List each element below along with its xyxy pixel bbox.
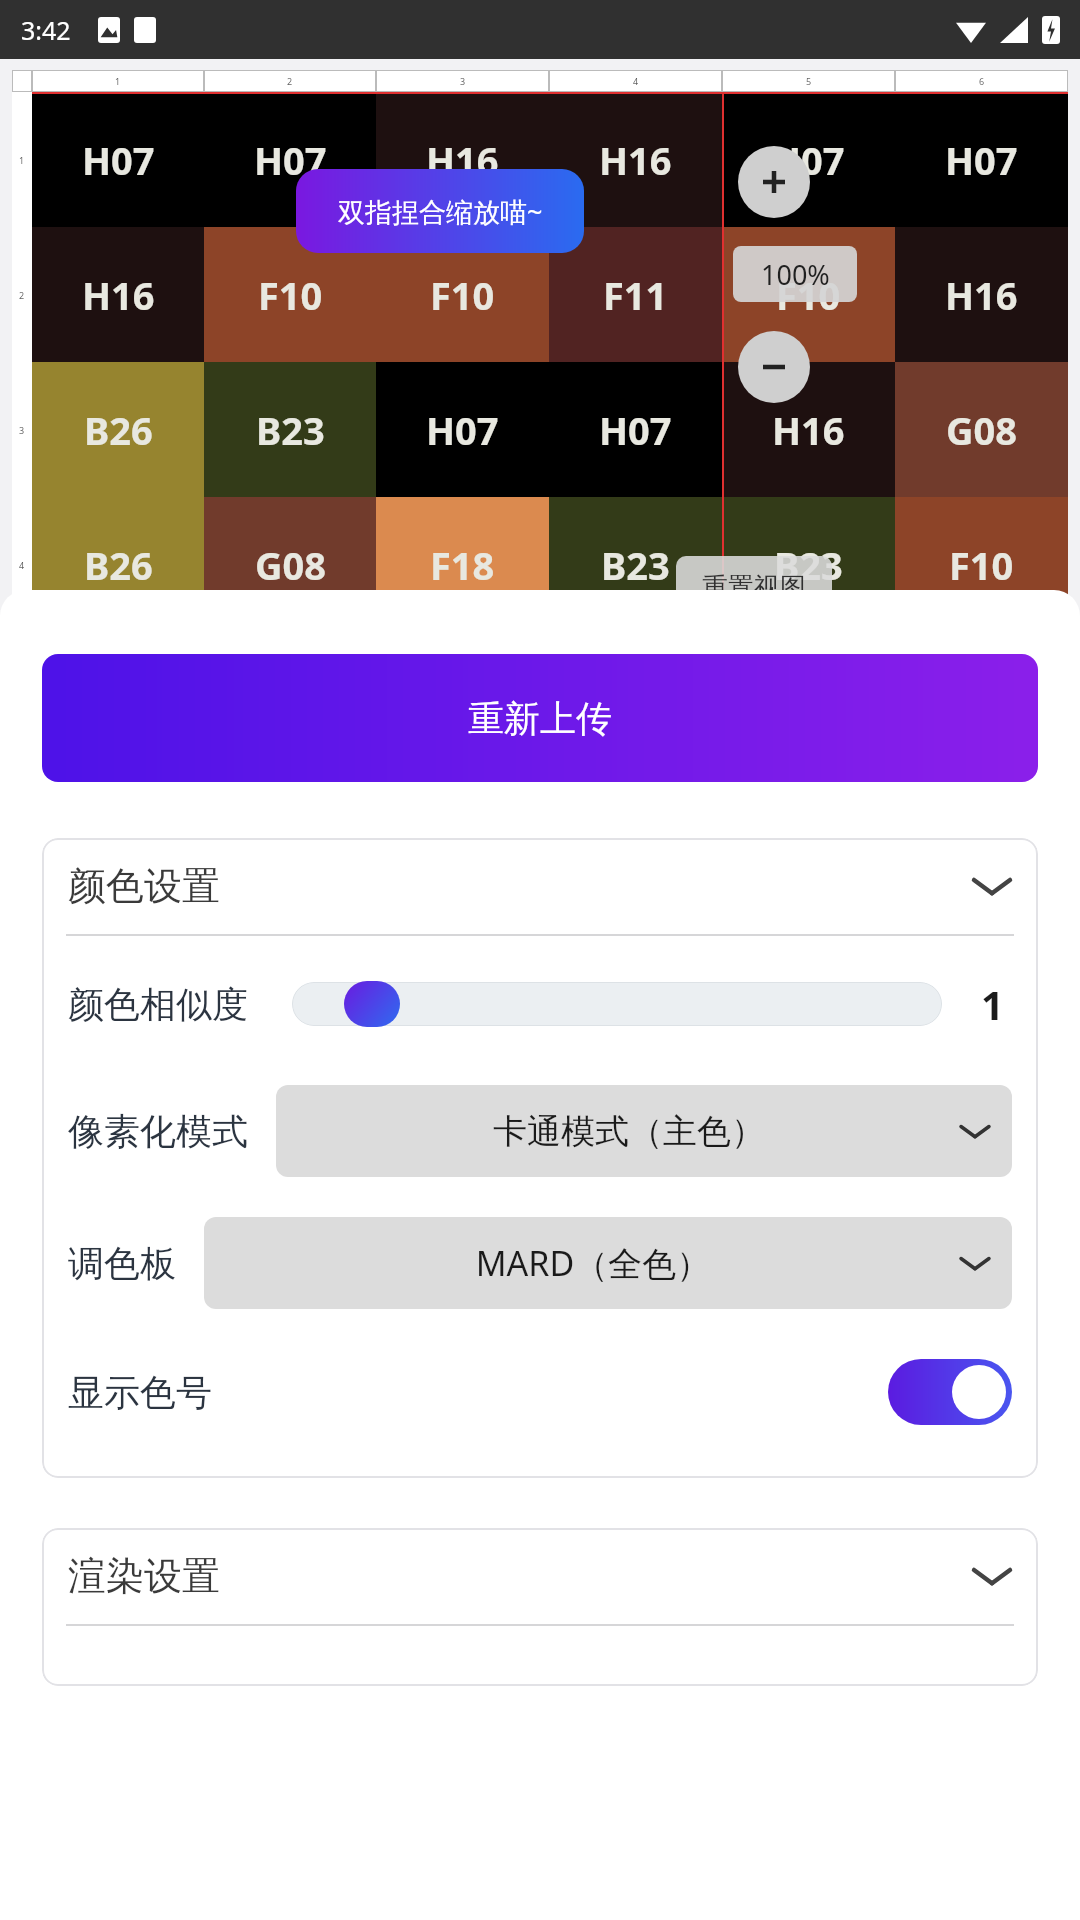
staticText: G08 <box>946 404 1017 456</box>
staticText: MARD（全色） <box>226 1240 960 1286</box>
staticText: H07 <box>599 404 672 456</box>
staticText: F10 <box>776 269 841 321</box>
staticText: 1 <box>19 154 25 166</box>
staticText: 显示色号 <box>68 1370 212 1415</box>
staticText: 4 <box>19 559 25 571</box>
staticText: 4 <box>633 75 639 87</box>
staticText: H16 <box>82 269 155 321</box>
staticText: 颜色设置 <box>68 862 972 910</box>
staticText: H07 <box>426 404 499 456</box>
staticText: H07 <box>254 134 327 186</box>
button[interactable] <box>292 981 942 1027</box>
button[interactable]: 显示色号开关 <box>888 1359 1012 1425</box>
staticText: 调色板 <box>68 1241 176 1286</box>
staticText: F18 <box>430 539 495 591</box>
staticText: B26 <box>84 539 153 591</box>
staticText: B23 <box>601 539 670 591</box>
staticText: 像素化模式 <box>68 1109 248 1154</box>
staticText: H16 <box>945 269 1018 321</box>
staticText: B26 <box>84 404 153 456</box>
button[interactable]: 重置视图 <box>676 556 832 618</box>
button[interactable]: 放大 <box>738 146 810 218</box>
staticText: 5 <box>806 75 812 87</box>
staticText: 双指捏合缩放喵~ <box>338 193 543 230</box>
staticText: 3:42 <box>21 13 71 47</box>
staticText: 2 <box>19 289 25 301</box>
staticText: 1 <box>981 977 1004 1031</box>
button[interactable]: 颜色设置 <box>42 838 1038 934</box>
staticText: F10 <box>258 269 323 321</box>
staticText: 颜色相似度 <box>68 982 248 1027</box>
staticText: H16 <box>772 404 845 456</box>
button[interactable]: MARD（全色） <box>204 1217 1012 1309</box>
staticText: B23 <box>774 539 843 591</box>
staticText: 渲染设置 <box>68 1552 972 1600</box>
staticText: G08 <box>255 539 326 591</box>
staticText: 2 <box>287 75 293 87</box>
staticText: 6 <box>979 75 985 87</box>
staticText: 100% <box>761 256 830 293</box>
button[interactable]: 渲染设置 <box>42 1528 1038 1624</box>
staticText: H07 <box>772 134 845 186</box>
staticText: 1 <box>115 75 121 87</box>
button[interactable]: 卡通模式（主色） <box>276 1085 1012 1177</box>
staticText: H07 <box>945 134 1018 186</box>
staticText: 3 <box>460 75 466 87</box>
staticText: 重置视图 <box>702 571 806 604</box>
staticText: H16 <box>426 134 499 186</box>
staticText: 卡通模式（主色） <box>298 1110 960 1153</box>
staticText: H07 <box>82 134 155 186</box>
staticText: 重新上传 <box>468 696 612 741</box>
staticText: F10 <box>949 539 1014 591</box>
staticText: F11 <box>603 269 668 321</box>
staticText: F10 <box>430 269 495 321</box>
button[interactable]: 缩小 <box>738 331 810 403</box>
staticText: 3 <box>19 424 25 436</box>
button[interactable]: 重新上传 <box>42 654 1038 782</box>
staticText: B23 <box>256 404 325 456</box>
staticText: H16 <box>599 134 672 186</box>
